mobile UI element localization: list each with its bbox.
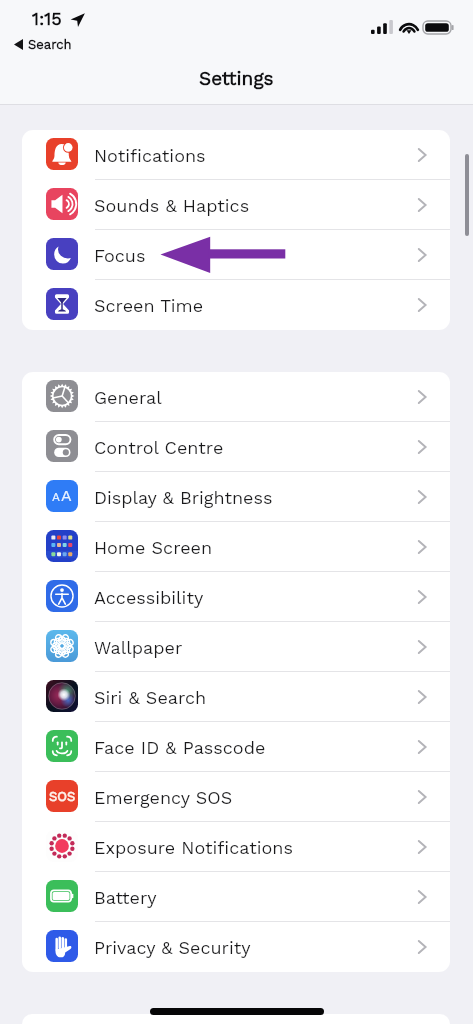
button[interactable]: Wallpaper xyxy=(22,622,450,672)
staticText: Notifications xyxy=(94,145,206,166)
staticText: Siri & Search xyxy=(94,687,207,708)
button[interactable]: A xyxy=(22,472,450,522)
staticText: Privacy & Security xyxy=(94,937,251,958)
staticText: Sounds & Haptics xyxy=(94,195,250,216)
staticText: A xyxy=(61,486,72,505)
staticText: Search xyxy=(28,37,72,52)
staticText: Home Screen xyxy=(94,537,213,558)
button[interactable]: Privacy & Security xyxy=(22,922,450,972)
button[interactable]: Screen Time xyxy=(22,280,450,330)
staticText: Accessibility xyxy=(94,587,204,608)
staticText: Display & Brightness xyxy=(94,487,273,508)
button[interactable]: Face ID & Passcode xyxy=(22,722,450,772)
staticText: Exposure Notifications xyxy=(94,837,293,858)
button[interactable]: Focus xyxy=(22,230,450,280)
staticText: Emergency SOS xyxy=(94,787,233,808)
button[interactable]: Control Centre xyxy=(22,422,450,472)
staticText: SOS xyxy=(49,789,76,804)
staticText: Battery xyxy=(94,887,157,908)
staticText: Settings xyxy=(199,67,274,89)
staticText: Screen Time xyxy=(94,295,204,316)
button[interactable]: Search xyxy=(14,37,72,52)
button[interactable]: Siri & Search xyxy=(22,672,450,722)
staticText: Focus xyxy=(94,245,146,266)
staticText: Control Centre xyxy=(94,437,224,458)
staticText: Face ID & Passcode xyxy=(94,737,266,758)
button[interactable]: Notifications xyxy=(22,130,450,180)
button[interactable]: General xyxy=(22,372,450,422)
button[interactable]: Home Screen xyxy=(22,522,450,572)
staticText: Wallpaper xyxy=(94,637,183,658)
button[interactable]: Exposure Notifications xyxy=(22,822,450,872)
staticText: General xyxy=(94,387,162,408)
button[interactable]: Battery xyxy=(22,872,450,922)
staticText: 1:15 xyxy=(32,8,62,29)
staticText: A xyxy=(52,490,60,504)
button[interactable]: Sounds & Haptics xyxy=(22,180,450,230)
button[interactable]: Accessibility xyxy=(22,572,450,622)
button[interactable]: SOS xyxy=(22,772,450,822)
